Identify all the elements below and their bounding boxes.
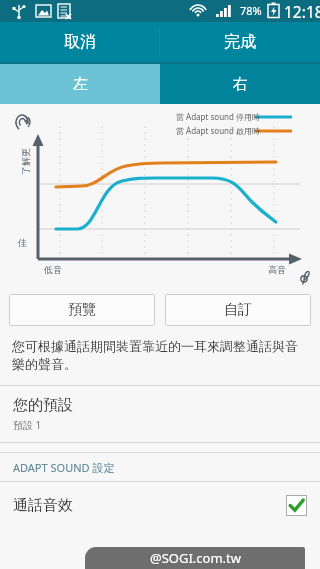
staticText: 12:18 [284,1,320,22]
staticText: 當 Adapt sound 啟用時 [176,125,261,136]
staticText: 自訂 [224,301,252,319]
button[interactable]: 右 [160,64,320,104]
button[interactable]: 完成 [160,22,320,62]
other: 通話音效 checkbox [286,495,307,516]
staticText: 通話音效 [13,496,73,515]
staticText: 您可根據通話期間裝置靠近的一耳來調整通話與音樂的聲音。 [12,338,308,373]
button[interactable]: 您的預設 [0,386,320,442]
staticText: 取消 [64,32,96,52]
staticText: 您的預設 [13,396,73,415]
staticText: 左 [73,75,88,94]
staticText: 預覽 [68,301,96,319]
staticText: 當 Adapt sound 停用時 [176,111,261,122]
staticText: 右 [233,75,248,94]
staticText: 低音 [44,264,62,275]
staticText: 預設 1 [13,418,42,432]
button[interactable]: 預覽 [9,294,155,326]
button[interactable]: 自訂 [165,294,311,326]
staticText: @SOGI.com.tw [150,549,241,567]
staticText: 78% [240,3,262,18]
button[interactable]: 左 [0,64,160,104]
button[interactable]: 取消 [0,22,159,62]
staticText: ADAPT SOUND 設定 [13,460,115,475]
staticText: 完成 [224,32,256,52]
staticText: 佳 [18,237,27,248]
staticText: 了解更 [20,148,31,175]
staticText: 高音 [268,264,286,275]
button[interactable]: 通話音效 [0,482,320,528]
